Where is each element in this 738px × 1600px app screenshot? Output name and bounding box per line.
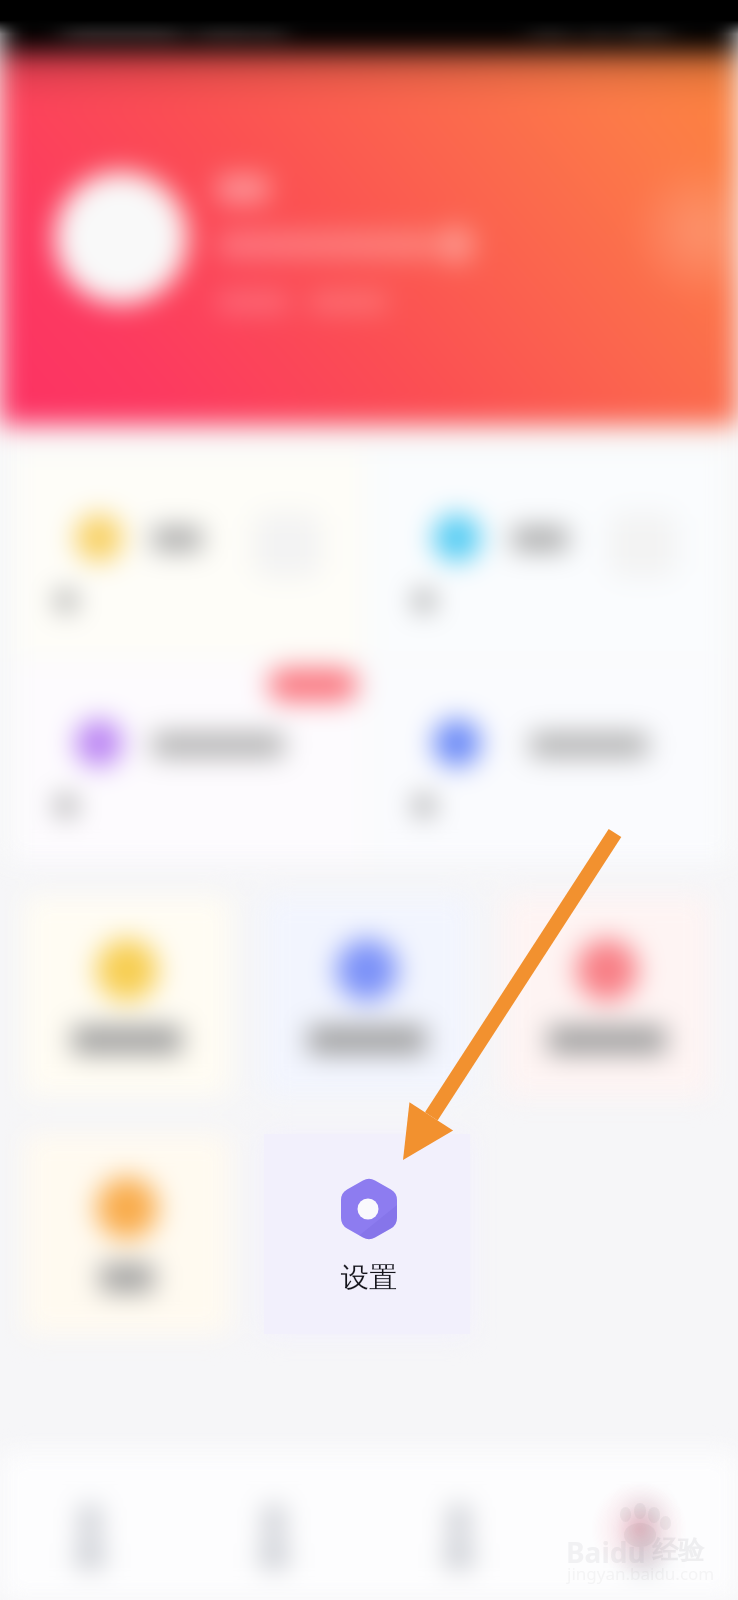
button[interactable]: Profile tab: [554, 1452, 738, 1600]
staticText: Baidu: [566, 1533, 646, 1571]
button[interactable]: Shortcut 3: [504, 896, 710, 1096]
button[interactable]: Home tab: [0, 1452, 184, 1600]
button[interactable]: Shortcut 4: [24, 1134, 230, 1334]
staticText: 经验: [652, 1534, 704, 1567]
button[interactable]: Card 3: [18, 662, 366, 862]
button[interactable]: Settings: [264, 1134, 470, 1334]
other: Settings: [264, 1134, 470, 1334]
button[interactable]: Shortcut 1: [24, 896, 230, 1096]
button[interactable]: Card 1: [18, 452, 366, 658]
button[interactable]: Card 2: [372, 452, 720, 658]
button[interactable]: Card 4: [372, 662, 720, 862]
staticText: 设置: [341, 1260, 397, 1295]
button[interactable]: Discover tab: [184, 1452, 369, 1600]
button[interactable]: Profile: [32, 160, 492, 320]
button[interactable]: Messages tab: [369, 1452, 554, 1600]
staticText: jingyan.baidu.com: [567, 1562, 715, 1585]
button[interactable]: Shortcut 2: [264, 896, 470, 1096]
